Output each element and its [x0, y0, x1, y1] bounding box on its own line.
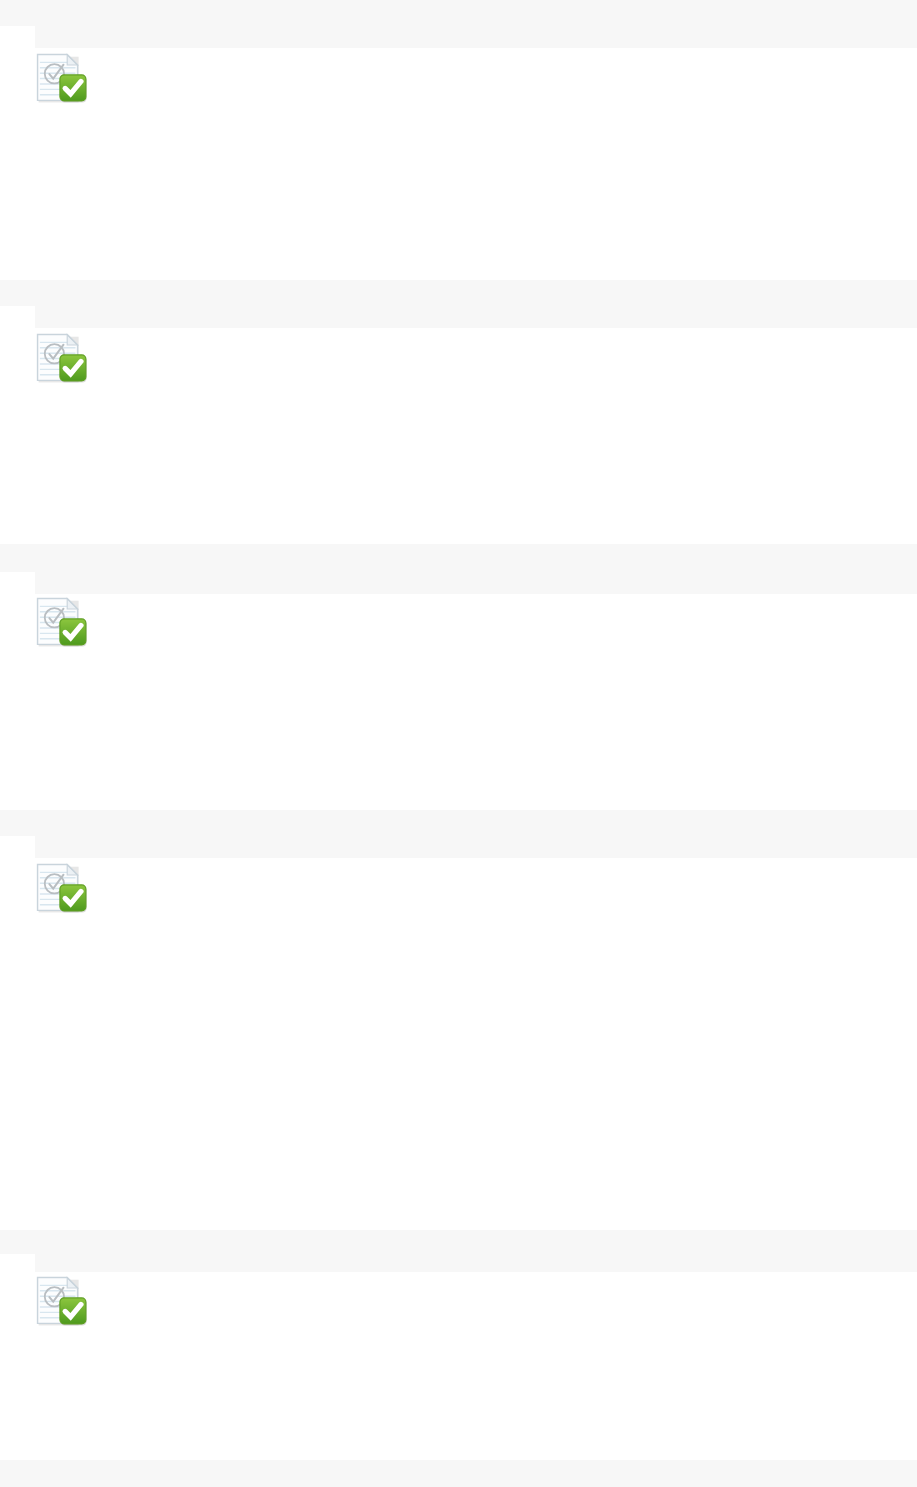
button[interactable]: Validated document — [36, 1275, 88, 1327]
button[interactable]: Validated document — [0, 594, 917, 810]
button[interactable]: Validated document — [36, 52, 88, 104]
button[interactable]: Validated document — [36, 332, 88, 384]
button[interactable]: Validated document — [0, 858, 917, 1230]
button[interactable]: Validated document — [0, 48, 917, 280]
button[interactable]: Validated document — [0, 328, 917, 544]
button[interactable]: Validated document — [36, 596, 88, 648]
button[interactable]: Validated document — [0, 1272, 917, 1460]
button[interactable]: Validated document — [36, 862, 88, 914]
